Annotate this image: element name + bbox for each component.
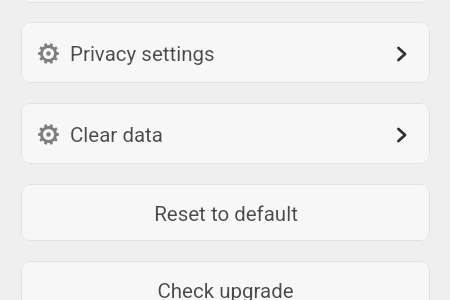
staticText: Privacy settings [70, 42, 215, 66]
other: Open Privacy settings [397, 47, 406, 61]
button[interactable]: Settings [21, 103, 430, 164]
staticText: Clear data [70, 123, 163, 147]
other: Settings [38, 124, 59, 145]
staticText: Check upgrade [157, 279, 294, 300]
other: Open Clear data [397, 128, 406, 142]
button[interactable]: Previous setting [21, 0, 430, 3]
button[interactable]: Settings [21, 22, 430, 83]
button[interactable]: Reset to default [21, 184, 430, 241]
button[interactable]: Check upgrade [21, 261, 430, 300]
other: Settings [38, 43, 59, 64]
staticText: Reset to default [154, 202, 298, 226]
